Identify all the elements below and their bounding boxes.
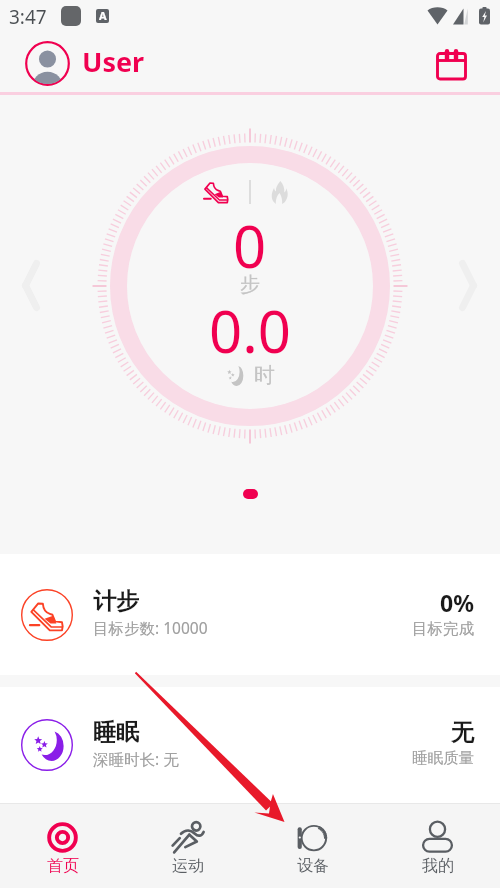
button[interactable]: 计步 bbox=[0, 554, 500, 675]
button[interactable]: User bbox=[25, 39, 145, 84]
button[interactable]: Next bbox=[459, 260, 477, 311]
staticText: 步 bbox=[240, 272, 260, 297]
staticText: 我的 bbox=[422, 856, 454, 876]
staticText: 时 bbox=[254, 362, 275, 388]
staticText: 睡眠质量 bbox=[412, 748, 474, 768]
staticText: 3:47 bbox=[9, 4, 47, 30]
button[interactable]: 运动 bbox=[125, 804, 250, 888]
staticText: A bbox=[99, 9, 107, 22]
staticText: User bbox=[82, 43, 145, 80]
staticText: 深睡时长: 无 bbox=[93, 748, 179, 769]
staticText: 设备 bbox=[297, 856, 329, 876]
staticText: 睡眠 bbox=[93, 718, 139, 747]
staticText: 目标步数: 10000 bbox=[93, 617, 208, 638]
button[interactable]: 首页 bbox=[0, 804, 125, 888]
button[interactable]: 设备 bbox=[250, 804, 375, 888]
button[interactable]: Previous bbox=[22, 260, 40, 311]
staticText: 0% bbox=[440, 587, 474, 618]
button[interactable]: 睡眠 bbox=[0, 687, 500, 803]
button[interactable]: Calendar bbox=[429, 40, 473, 84]
staticText: 0 bbox=[233, 206, 267, 285]
staticText: 运动 bbox=[172, 856, 204, 876]
staticText: 无 bbox=[451, 718, 474, 747]
staticText: 计步 bbox=[93, 587, 139, 616]
staticText: 0.0 bbox=[209, 291, 291, 370]
staticText: 首页 bbox=[47, 856, 79, 876]
staticText: 目标完成 bbox=[412, 619, 474, 639]
button[interactable]: 我的 bbox=[375, 804, 500, 888]
